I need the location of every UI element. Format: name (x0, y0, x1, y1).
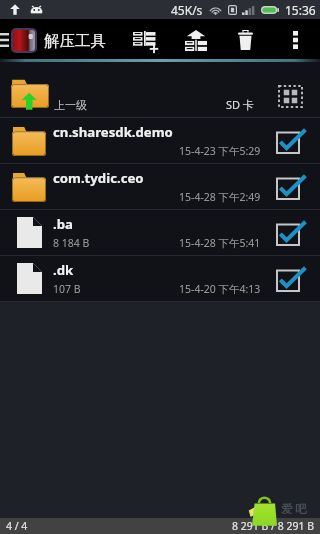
staticText: 15-4-28 下午5:41 (179, 236, 261, 250)
staticText: 107 B (53, 282, 81, 296)
staticText: .ba (53, 215, 73, 233)
staticText: 爱 吧 (281, 501, 307, 517)
button[interactable]: Selected (276, 172, 308, 202)
staticText: .dk (53, 261, 74, 279)
button[interactable]: Extract (179, 20, 213, 60)
staticText: 15:36 (285, 2, 316, 18)
staticText: 8 184 B (53, 236, 90, 250)
button[interactable]: Selected (276, 126, 308, 156)
button[interactable]: Selected (276, 264, 308, 294)
button[interactable]: Selected (276, 218, 308, 248)
staticText: 8 291 B / 8 291 B (232, 519, 314, 533)
staticText: 4 / 4 (6, 519, 28, 533)
button[interactable]: Select all (278, 85, 303, 108)
button[interactable]: cn.sharesdk.demo (0, 118, 320, 163)
button[interactable]: Delete (229, 20, 261, 60)
button[interactable]: .ba (0, 210, 320, 255)
staticText: cn.sharesdk.demo (53, 123, 173, 141)
staticText: SD 卡 (226, 97, 254, 112)
staticText: com.tydic.ceo (53, 169, 144, 187)
staticText: 15-4-23 下午5:29 (179, 144, 261, 158)
staticText: 解压工具 (44, 31, 106, 51)
staticText: 15-4-28 下午2:49 (179, 190, 261, 204)
button[interactable]: .dk (0, 256, 320, 301)
staticText: 45K/s (171, 2, 203, 18)
staticText: 15-4-20 下午4:13 (179, 282, 261, 296)
button[interactable]: com.tydic.ceo (0, 164, 320, 209)
button[interactable]: 上一级 (0, 62, 320, 117)
button[interactable]: Navigate up (0, 19, 39, 59)
button[interactable]: Add to archive (128, 21, 162, 61)
staticText: 上一级 (54, 98, 87, 112)
button[interactable]: More options (279, 20, 311, 60)
